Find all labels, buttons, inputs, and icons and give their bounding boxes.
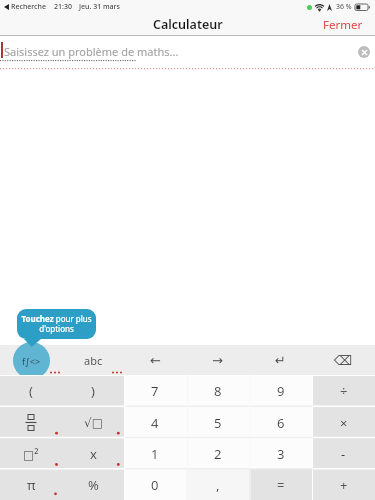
staticText: π (27, 476, 36, 494)
button[interactable]: ↵ (249, 345, 312, 375)
staticText: ( (29, 382, 33, 400)
button[interactable]: - (312, 438, 375, 469)
staticText: = (277, 476, 285, 494)
staticText: □² (23, 446, 39, 462)
button[interactable]: 3 (249, 438, 312, 469)
staticText: Calculateur (153, 16, 223, 33)
button[interactable]: % (62, 469, 124, 500)
staticText: 7 (151, 382, 159, 400)
staticText: 3 (277, 445, 285, 463)
button[interactable]: , (186, 469, 249, 500)
staticText: → (212, 353, 223, 368)
staticText: 5 (214, 414, 222, 432)
button[interactable]: □² (0, 438, 62, 469)
staticText: Recherche (11, 2, 46, 12)
button[interactable]: ( (0, 375, 62, 407)
staticText: 4 (151, 414, 159, 432)
staticText: 21:30 (54, 2, 72, 12)
staticText: Touchez pour plus d'options (21, 313, 92, 335)
button[interactable]: Saisissez un problème de maths... (0, 36, 375, 68)
button[interactable]: π (0, 469, 62, 500)
staticText: x (90, 445, 97, 463)
staticText: , (216, 476, 220, 494)
staticText: + (340, 476, 348, 494)
staticText: abc (84, 353, 103, 368)
staticText: f∫<> (22, 355, 41, 367)
staticText: ↵ (275, 353, 286, 368)
button[interactable]: Fermer (323, 14, 363, 35)
staticText: ) (91, 382, 95, 400)
button[interactable]: 6 (249, 407, 312, 438)
staticText: √□ (84, 416, 103, 430)
staticText: 6 (277, 414, 285, 432)
button[interactable]: Touchez pour plus d'options (17, 309, 96, 339)
button[interactable]: 5 (186, 407, 249, 438)
staticText: Saisissez un problème de maths... (4, 44, 179, 59)
button[interactable]: ) (62, 375, 124, 407)
staticText: 8 (214, 382, 222, 400)
button[interactable] (358, 46, 370, 58)
button[interactable]: 7 (124, 375, 186, 407)
staticText: Jeu. 31 mars (79, 2, 120, 12)
button[interactable]: ← (124, 345, 186, 375)
staticText: 9 (277, 382, 285, 400)
button[interactable]: abc (62, 345, 124, 375)
button[interactable]: ⌫ (312, 345, 375, 375)
staticText: 2 (214, 445, 222, 463)
staticText: 1 (151, 445, 159, 463)
button[interactable] (0, 407, 62, 438)
button[interactable]: 4 (124, 407, 186, 438)
button[interactable]: 2 (186, 438, 249, 469)
button[interactable]: = (249, 469, 312, 500)
staticText: ⌫ (334, 353, 353, 368)
staticText: ← (150, 353, 161, 368)
button[interactable]: ÷ (312, 375, 375, 407)
staticText: × (340, 414, 348, 432)
button[interactable]: → (186, 345, 249, 375)
staticText: - (341, 445, 346, 463)
button[interactable]: + (312, 469, 375, 500)
button[interactable]: 9 (249, 375, 312, 407)
staticText: 36 % (336, 2, 352, 12)
button[interactable]: × (312, 407, 375, 438)
staticText: % (88, 476, 99, 494)
button[interactable]: x (62, 438, 124, 469)
staticText: ÷ (340, 382, 348, 400)
staticText: Fermer (323, 17, 363, 33)
button[interactable]: 8 (186, 375, 249, 407)
button[interactable]: 0 (124, 469, 186, 500)
button[interactable]: 1 (124, 438, 186, 469)
staticText: 0 (151, 476, 159, 494)
button[interactable]: f∫<> (0, 345, 62, 375)
button[interactable]: √□ (62, 407, 124, 438)
